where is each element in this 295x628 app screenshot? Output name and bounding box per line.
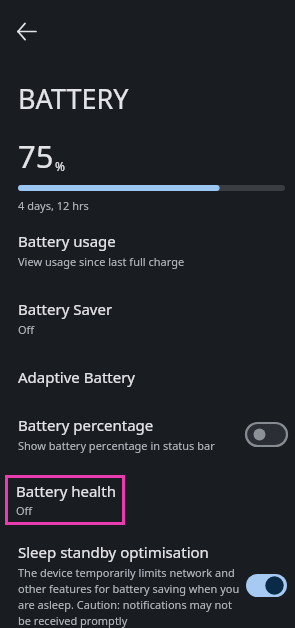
button[interactable]: Battery health [5,475,125,525]
staticText: View usage since last full charge [18,254,185,269]
staticText: 4 days, 12 hrs [18,198,89,213]
button[interactable]: Sleep standby optimisation toggle [246,574,287,597]
button[interactable]: Sleep standby optimisation [0,542,295,628]
button[interactable]: Battery percentage [0,415,295,453]
staticText: Off [16,503,33,518]
staticText: Sleep standby optimisation [18,542,209,562]
staticText: 75 [18,135,54,177]
staticText: % [55,158,65,174]
staticText: Battery Saver [18,299,113,319]
staticText: Battery percentage [18,415,154,435]
button[interactable]: Battery percentage toggle [246,423,287,446]
staticText: Battery health [16,481,116,501]
staticText: The device temporarily limits network an… [18,565,240,628]
button[interactable]: Adaptive Battery [0,367,295,393]
staticText: BATTERY [18,80,129,117]
staticText: Battery usage [18,231,116,251]
button[interactable]: Battery usage [0,231,295,275]
button[interactable]: Back [9,14,43,48]
staticText: Show battery percentage in status bar [18,438,215,453]
button[interactable]: Battery Saver [0,299,295,343]
staticText: Off [18,322,35,337]
staticText: Adaptive Battery [18,367,136,387]
